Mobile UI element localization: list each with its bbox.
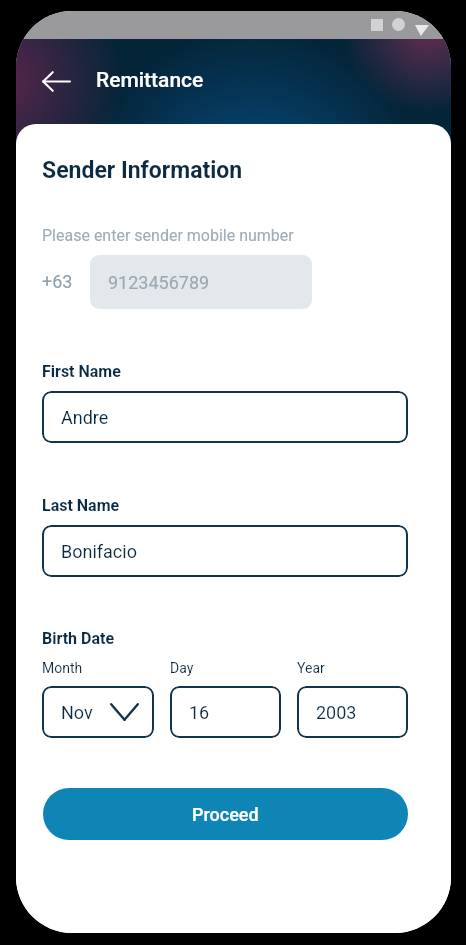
- staticText: Bonifacio: [61, 541, 137, 562]
- staticText: First Name: [42, 362, 121, 381]
- button[interactable]: 9123456789: [90, 255, 312, 309]
- staticText: Birth Date: [42, 629, 115, 648]
- staticText: 9123456789: [108, 272, 210, 293]
- staticText: Last Name: [42, 496, 120, 515]
- button[interactable]: Nov: [42, 686, 154, 738]
- staticText: Andre: [61, 407, 109, 428]
- staticText: Please enter sender mobile number: [42, 226, 294, 245]
- button[interactable]: Bonifacio: [42, 525, 408, 577]
- staticText: Nov: [61, 702, 93, 723]
- button[interactable]: Back: [29, 54, 83, 108]
- staticText: 2003: [316, 702, 357, 723]
- button[interactable]: Andre: [42, 391, 408, 443]
- staticText: Day: [170, 660, 194, 676]
- button[interactable]: 2003: [297, 686, 408, 738]
- staticText: +63: [42, 271, 73, 292]
- staticText: Remittance: [96, 68, 204, 93]
- button[interactable]: Proceed: [43, 788, 408, 840]
- button[interactable]: 16: [170, 686, 281, 738]
- staticText: Proceed: [192, 804, 259, 825]
- staticText: 16: [189, 702, 210, 723]
- staticText: Sender Information: [42, 157, 243, 184]
- staticText: Month: [42, 660, 83, 676]
- staticText: Year: [297, 660, 325, 676]
